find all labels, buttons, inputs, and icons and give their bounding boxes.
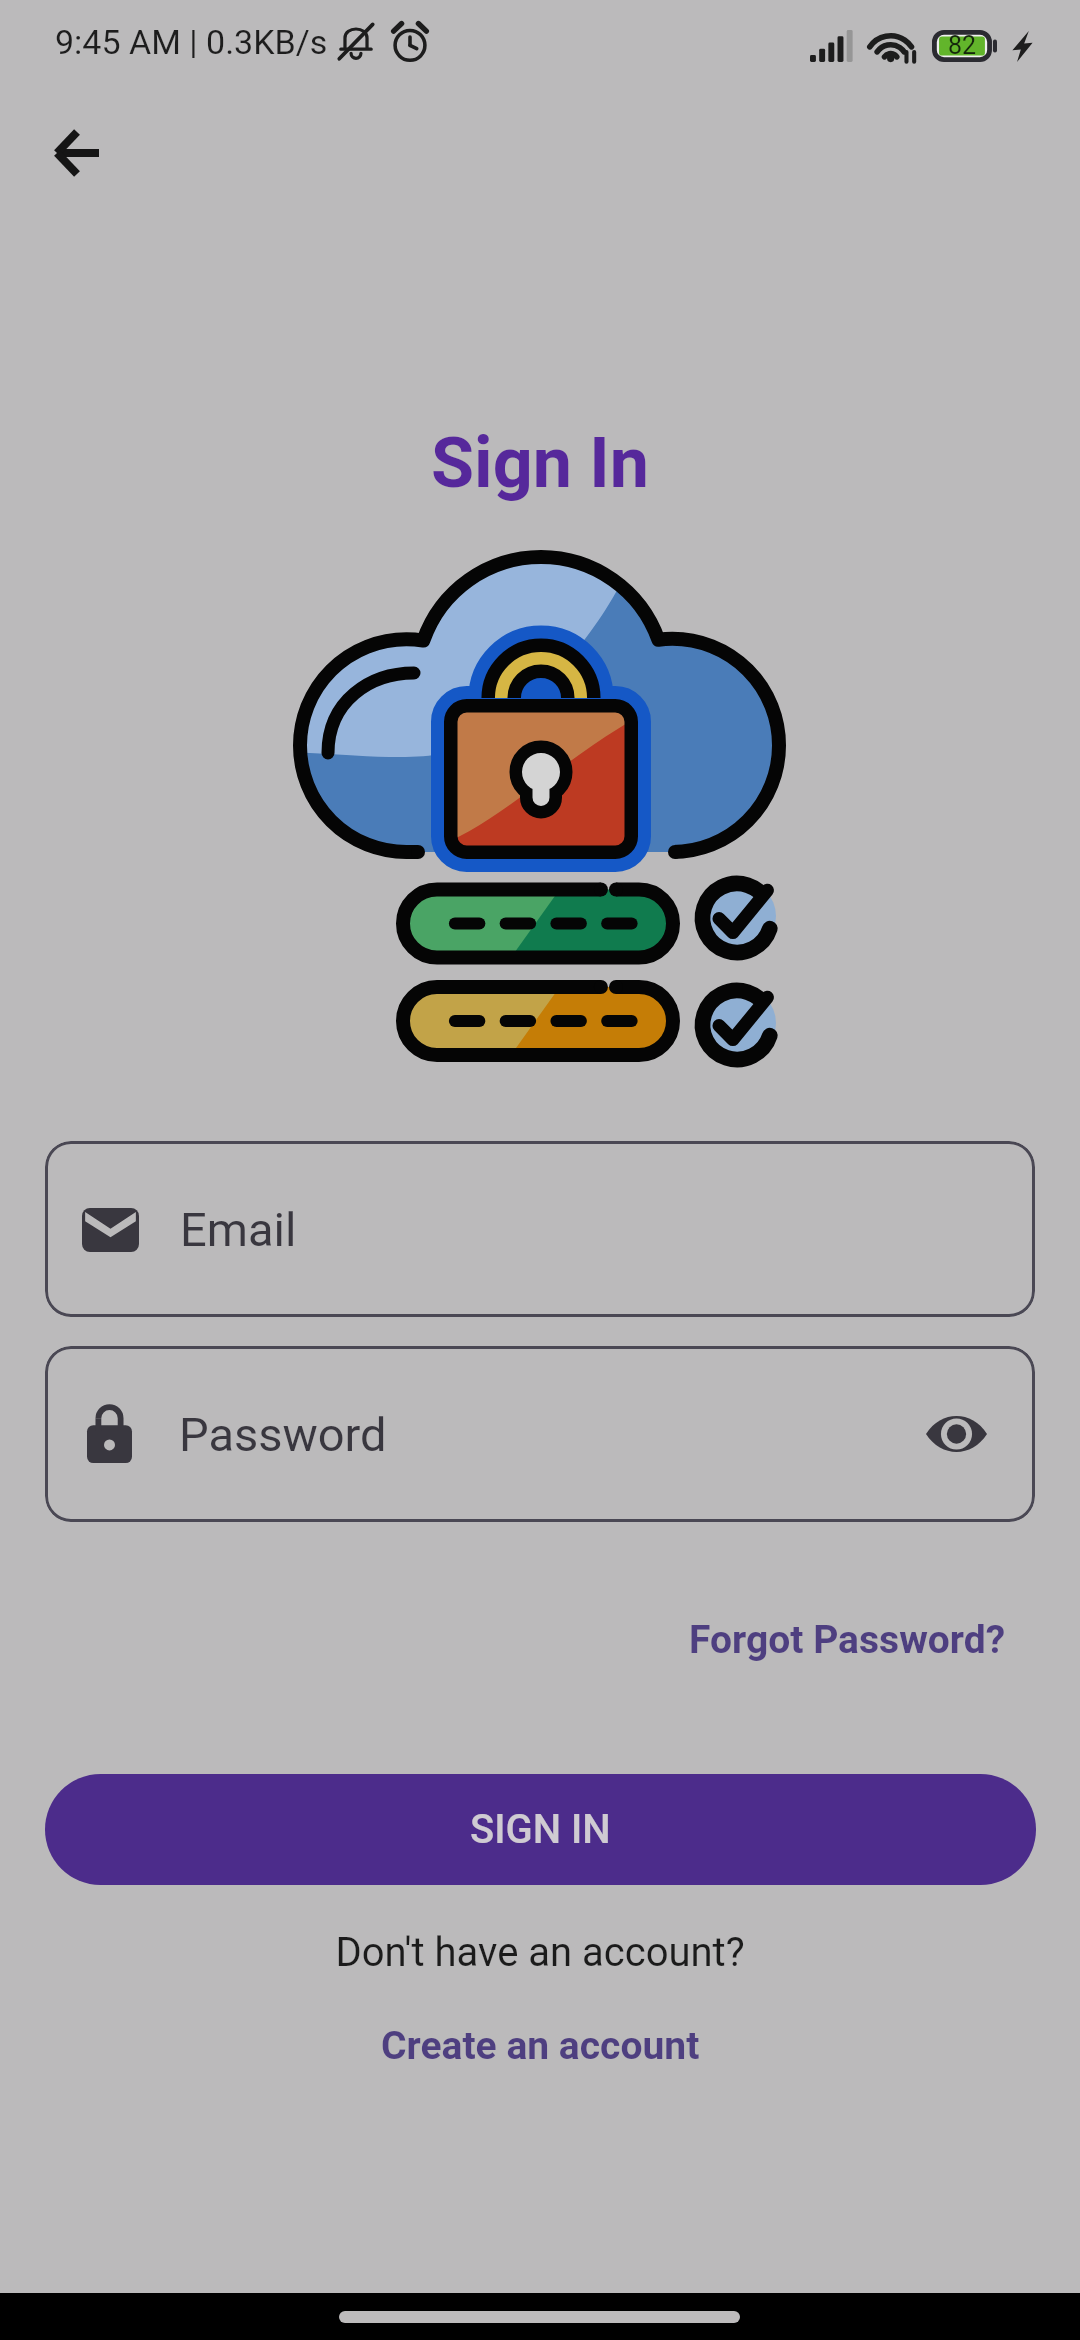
staticText: Forgot Password?	[689, 1617, 1006, 1663]
staticText: Don't have an account?	[0, 1929, 1080, 1976]
button[interactable]: Back	[29, 105, 125, 201]
staticText: Email	[180, 1202, 297, 1257]
staticText: 9:45 AM | 0.3KB/s	[55, 22, 328, 62]
button[interactable]: SIGN IN	[45, 1774, 1036, 1885]
button[interactable]: Password	[45, 1346, 1035, 1522]
staticText: Password	[179, 1407, 387, 1462]
button[interactable]: Show password	[903, 1381, 1009, 1487]
button[interactable]: Forgot Password?	[665, 1601, 1030, 1679]
button[interactable]: Create an account	[357, 2007, 724, 2085]
button[interactable]: Email	[45, 1141, 1035, 1317]
staticText: Sign In	[0, 422, 1080, 504]
staticText: SIGN IN	[470, 1806, 611, 1853]
staticText: 82	[948, 31, 977, 60]
staticText: Create an account	[381, 2023, 700, 2069]
